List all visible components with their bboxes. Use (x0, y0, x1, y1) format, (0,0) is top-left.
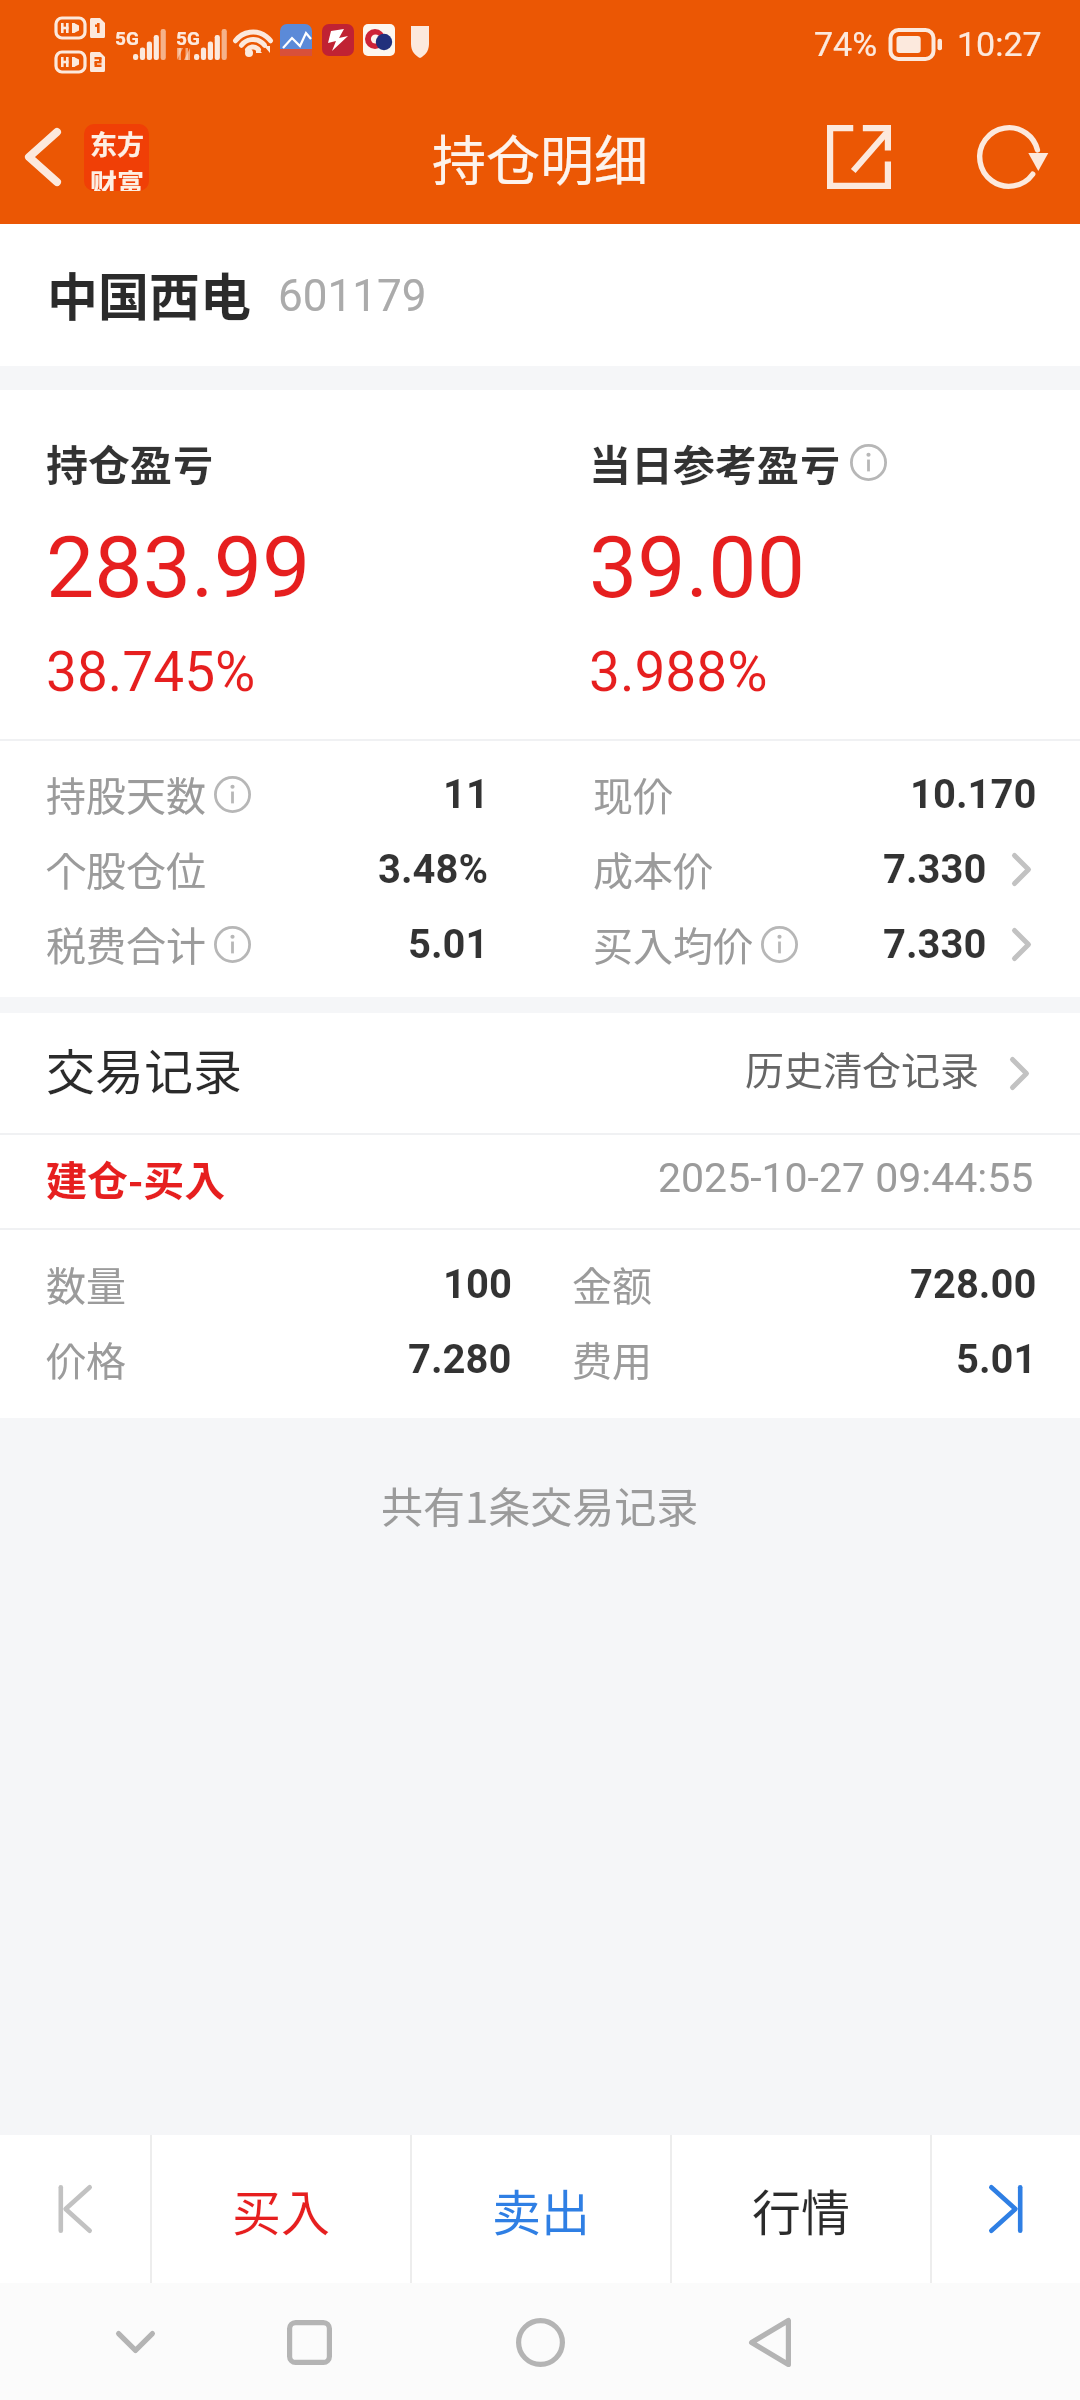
staticText: 费用 (572, 1330, 652, 1388)
staticText: 7.330 (883, 846, 987, 893)
staticText: 5.01 (408, 921, 489, 968)
button[interactable]: 历史清仓记录 (745, 1035, 1029, 1111)
staticText: 价格 (46, 1330, 126, 1388)
staticText: 共有1条交易记录 (381, 1474, 699, 1535)
staticText: 成本价 (593, 840, 713, 898)
button[interactable]: Back (725, 2297, 815, 2387)
staticText: 财富 (90, 163, 144, 191)
button[interactable]: Home (495, 2297, 585, 2387)
staticText: 283.99 (46, 517, 311, 618)
button[interactable]: Back (6, 120, 80, 194)
staticText: 3.988% (589, 640, 768, 704)
staticText: 11 (443, 771, 489, 818)
staticText: 持股天数 (46, 765, 206, 823)
staticText: 东方 (90, 124, 144, 163)
staticText: 买入 (232, 2174, 331, 2245)
staticText: 建仓-买入 (46, 1148, 226, 1207)
staticText: 601179 (278, 270, 427, 322)
staticText: 历史清仓记录 (745, 1040, 980, 1096)
staticText: 行情 (752, 2174, 851, 2245)
staticText: 7.330 (883, 921, 987, 968)
staticText: 3.48% (378, 846, 489, 893)
staticText: 现价 (593, 765, 673, 823)
button[interactable]: Last page (932, 2135, 1080, 2283)
button[interactable]: 买入 (152, 2135, 410, 2283)
staticText: 买入均价 (593, 915, 753, 973)
staticText: 10:27 (957, 24, 1042, 64)
staticText: 税费合计 (46, 915, 206, 973)
staticText: 39.00 (589, 517, 806, 618)
staticText: 交易记录 (46, 1033, 243, 1104)
staticText: 当日参考盈亏 (589, 432, 842, 493)
button[interactable]: Recent apps (264, 2297, 354, 2387)
staticText: 持仓明细 (432, 118, 648, 196)
button[interactable]: First page (0, 2135, 150, 2283)
button[interactable]: Refresh (961, 109, 1057, 205)
button[interactable]: 卖出 (412, 2135, 670, 2283)
staticText: 5G (176, 27, 200, 49)
staticText: 74% (814, 24, 878, 64)
button[interactable]: 行情 (672, 2135, 930, 2283)
staticText: 卖出 (492, 2174, 591, 2245)
staticText: 100 (443, 1261, 512, 1308)
staticText: 中国西电 (47, 257, 252, 331)
staticText: 38.745% (46, 640, 256, 704)
button[interactable]: 东方财富 (84, 124, 149, 191)
staticText: 2025-10-27 09:44:55 (658, 1154, 1034, 1202)
staticText: 10.170 (910, 771, 1037, 818)
button[interactable]: Share (811, 109, 907, 205)
button[interactable]: Hide keyboard (90, 2297, 180, 2387)
staticText: 个股仓位 (46, 840, 206, 898)
staticText: 5.01 (956, 1336, 1037, 1383)
staticText: 持仓盈亏 (46, 432, 215, 493)
staticText: 5G (115, 27, 139, 49)
staticText: 金额 (572, 1255, 652, 1313)
staticText: 7.280 (408, 1336, 512, 1383)
staticText: 728.00 (910, 1261, 1037, 1308)
staticText: 数量 (46, 1255, 126, 1313)
